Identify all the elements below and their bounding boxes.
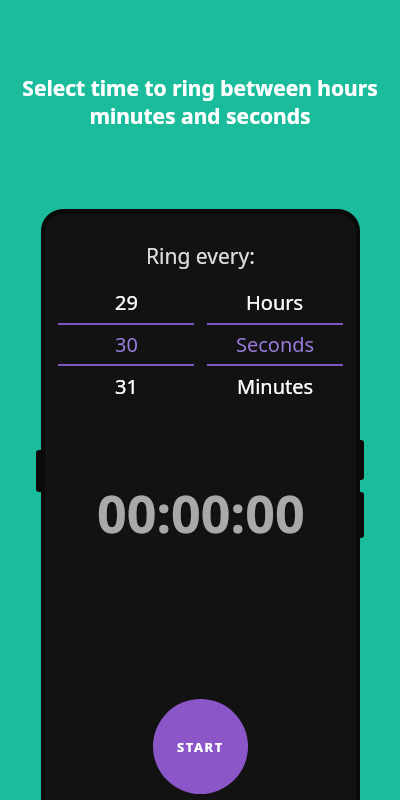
button[interactable]: START xyxy=(153,699,248,794)
staticText: 00:00:00 xyxy=(97,477,305,548)
staticText: Select time to ring between hours minute… xyxy=(22,74,378,130)
staticText: Minutes xyxy=(237,373,314,400)
staticText: 29 xyxy=(115,289,138,316)
staticText: START xyxy=(177,738,224,756)
staticText: Hours xyxy=(246,289,304,316)
button[interactable]: 29 xyxy=(58,282,194,407)
button[interactable]: Hours xyxy=(207,282,343,407)
staticText: 30 xyxy=(115,331,138,358)
staticText: Ring every: xyxy=(146,242,255,271)
staticText: 31 xyxy=(115,373,138,400)
staticText: Seconds xyxy=(236,331,315,358)
